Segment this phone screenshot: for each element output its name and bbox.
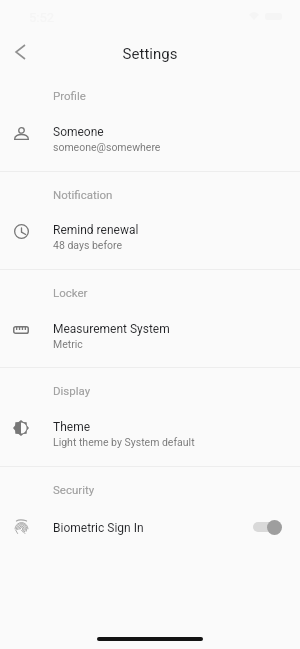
staticText: Light theme by System default <box>53 436 195 448</box>
button[interactable] <box>3 213 39 249</box>
staticText: Locker <box>53 286 88 299</box>
staticText: Theme <box>53 420 91 434</box>
staticText: Measurement System <box>53 322 170 336</box>
staticText: Remind renewal <box>53 223 139 237</box>
button[interactable] <box>3 509 39 545</box>
button[interactable] <box>3 410 39 446</box>
button[interactable]: Back <box>6 38 34 66</box>
staticText: 48 days before <box>53 239 123 251</box>
staticText: Biometric Sign In <box>53 521 144 535</box>
staticText: Display <box>53 384 91 397</box>
staticText: Settings <box>0 45 300 63</box>
button[interactable]: Biometric Sign In toggle <box>253 518 278 536</box>
button[interactable] <box>3 312 39 348</box>
staticText: someone@somewhere <box>53 141 161 153</box>
button[interactable] <box>3 115 39 151</box>
staticText: Profile <box>53 89 86 102</box>
staticText: Metric <box>53 338 83 350</box>
staticText: Someone <box>53 125 104 139</box>
staticText: Security <box>53 483 95 496</box>
staticText: Notification <box>53 188 113 201</box>
